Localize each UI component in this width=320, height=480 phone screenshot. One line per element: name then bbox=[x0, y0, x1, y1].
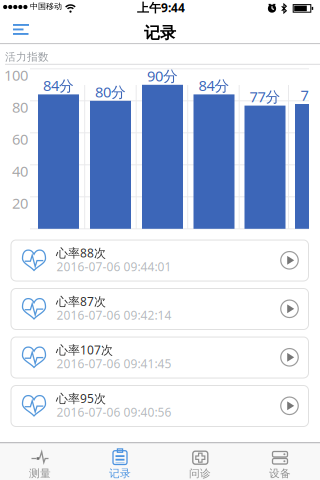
button[interactable]: 心率95次 bbox=[11, 385, 308, 426]
staticText: 记录 bbox=[144, 23, 176, 43]
button[interactable]: 测量 bbox=[0, 442, 80, 480]
staticText: 心率95次 bbox=[56, 390, 106, 406]
staticText: 问诊 bbox=[189, 467, 211, 480]
staticText: 2016-07-06 09:40:56 bbox=[56, 404, 171, 420]
staticText: 60 bbox=[12, 129, 28, 149]
staticText: 2016-07-06 09:41:45 bbox=[56, 356, 171, 371]
staticText: 中国移动 bbox=[30, 1, 62, 11]
staticText: 2016-07-06 09:42:14 bbox=[56, 307, 171, 323]
staticText: 80 bbox=[12, 97, 28, 117]
staticText: 77分 bbox=[249, 87, 280, 106]
button[interactable] bbox=[6, 21, 38, 41]
button[interactable]: 心率107次 bbox=[11, 337, 308, 378]
button[interactable]: 设备 bbox=[240, 442, 320, 480]
staticText: 40 bbox=[12, 161, 28, 181]
staticText: 84分 bbox=[43, 76, 74, 95]
staticText: 活力指数 bbox=[5, 50, 49, 63]
button[interactable]: 心率88次 bbox=[11, 240, 308, 281]
staticText: 7 bbox=[300, 85, 308, 105]
staticText: 80分 bbox=[95, 82, 126, 102]
staticText: 20 bbox=[12, 193, 28, 213]
staticText: 90分 bbox=[147, 66, 178, 86]
staticText: 心率87次 bbox=[56, 293, 106, 309]
staticText: 心率88次 bbox=[56, 245, 106, 261]
button[interactable]: 记录 bbox=[80, 442, 160, 480]
staticText: 2016-07-06 09:44:01 bbox=[56, 259, 171, 274]
staticText: 设备 bbox=[269, 467, 291, 480]
staticText: 84分 bbox=[198, 76, 229, 95]
button[interactable]: 心率87次 bbox=[11, 288, 308, 329]
staticText: 100 bbox=[4, 65, 28, 85]
staticText: 上午9:44 bbox=[137, 0, 185, 15]
button[interactable]: 问诊 bbox=[160, 442, 240, 480]
staticText: 测量 bbox=[29, 467, 51, 480]
staticText: 记录 bbox=[109, 467, 131, 480]
staticText: 心率107次 bbox=[56, 342, 113, 358]
